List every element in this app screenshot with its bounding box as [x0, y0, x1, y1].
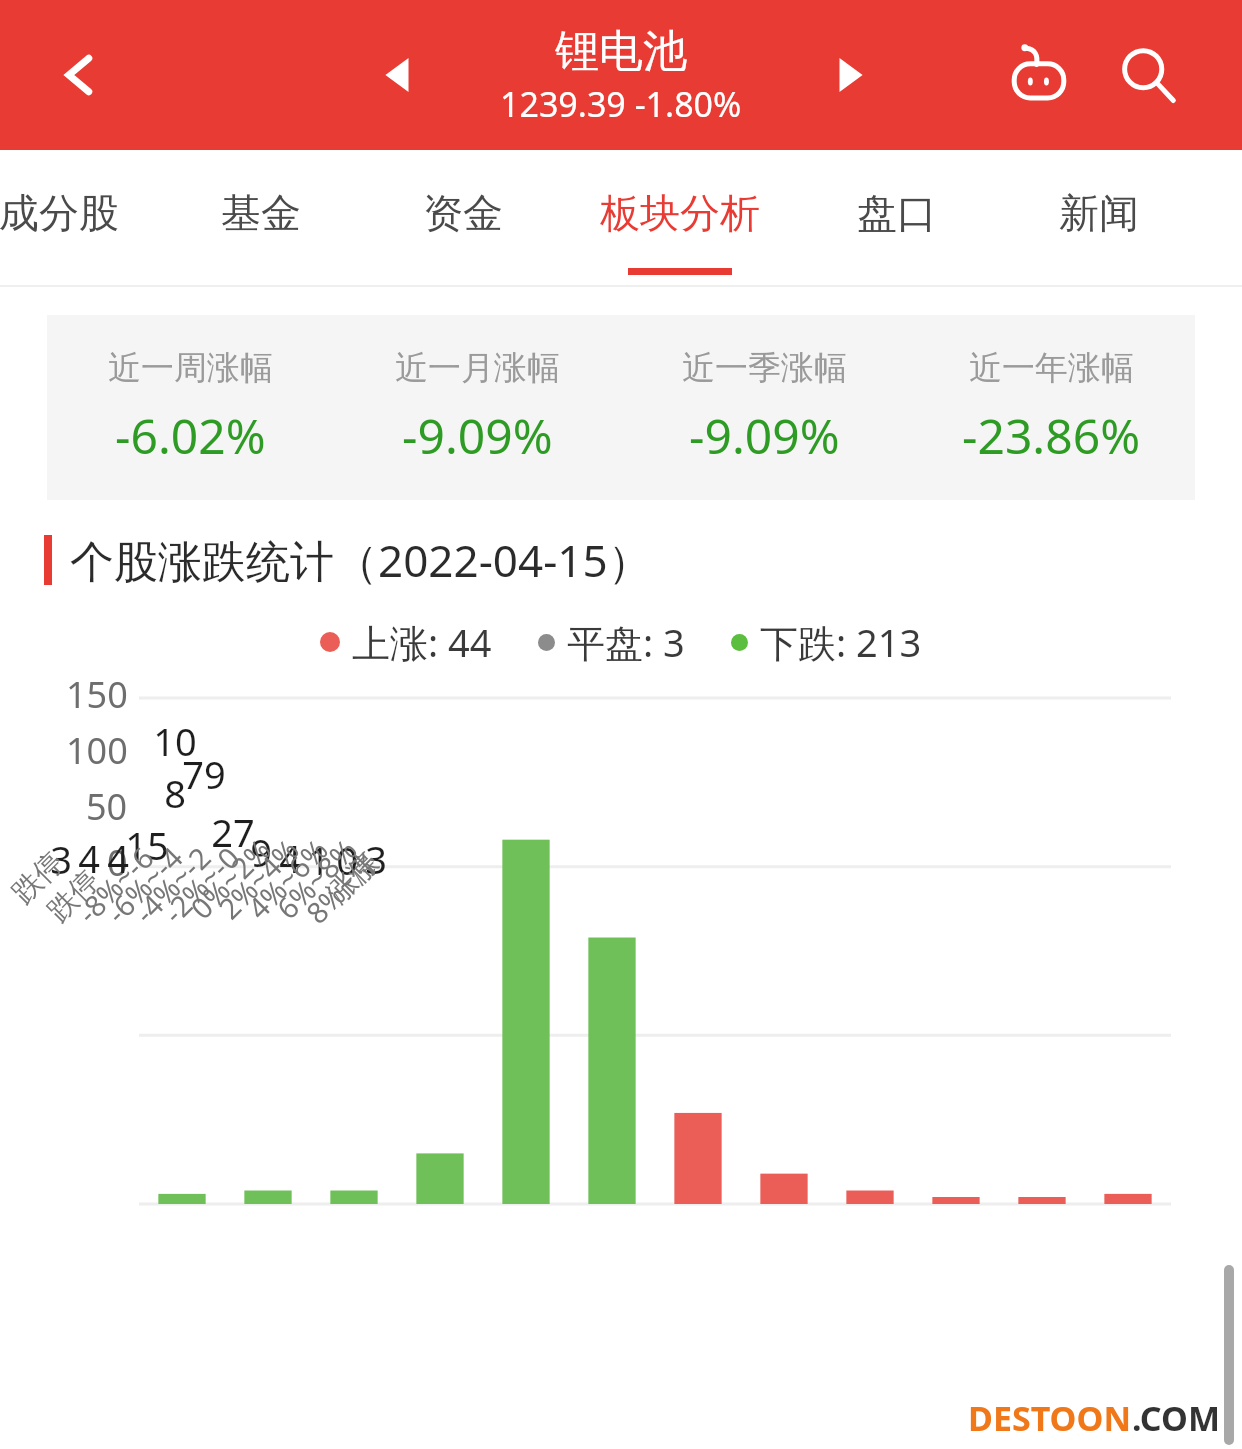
staticText: 个股涨跌统计（2022-04-15） [70, 530, 652, 590]
staticText: 50 [86, 782, 128, 831]
staticText: 上涨: 44 [352, 616, 492, 668]
staticText: 4%~6% [239, 830, 335, 927]
staticText: .COM [1132, 1395, 1220, 1441]
button[interactable]: 下跌: 213 [731, 616, 922, 668]
staticText: -9.09% [689, 403, 840, 468]
staticText: 涨停 [319, 844, 387, 911]
staticText: 79 [182, 748, 226, 800]
button[interactable]: 上涨: 44 [320, 616, 492, 668]
staticText: 27 [211, 806, 255, 858]
staticText: 108 [145, 715, 205, 819]
staticText: 近一周涨幅 [108, 347, 273, 389]
staticText: -2%~-0% [154, 826, 260, 931]
staticText: -8%~-6% [68, 826, 174, 931]
staticText: 盘口 [857, 188, 937, 238]
button[interactable]: 锂电池 [500, 24, 742, 127]
button[interactable]: 近一年涨幅 [908, 347, 1195, 468]
staticText: 新闻 [1059, 188, 1139, 238]
staticText: 成分股 [0, 188, 119, 238]
staticText: 0 [107, 838, 128, 887]
staticText: 近一年涨幅 [969, 347, 1134, 389]
button[interactable]: Previous sector [364, 40, 434, 110]
staticText: 6%~8% [268, 830, 364, 927]
staticText: 0 [336, 834, 358, 886]
staticText: 1239.39 -1.80% [500, 81, 742, 127]
button[interactable]: 盘口 [796, 150, 998, 287]
staticText: 1 [308, 834, 330, 886]
staticText: 0%~2% [182, 830, 278, 927]
staticText: DESTOON [968, 1395, 1132, 1441]
staticText: 跌停 [4, 844, 72, 911]
staticText: 100 [66, 726, 128, 775]
staticText: 9 [250, 826, 272, 878]
button[interactable]: 平盘: 3 [538, 616, 685, 668]
staticText: -9.09% [402, 403, 553, 468]
button[interactable]: Assistant [996, 32, 1082, 118]
staticText: 基金 [221, 188, 301, 238]
staticText: 2%~4% [210, 830, 306, 927]
staticText: 板块分析 [600, 188, 760, 238]
button[interactable]: 资金 [362, 150, 564, 287]
button[interactable]: Search [1106, 32, 1192, 118]
staticText: 4 [107, 832, 129, 884]
button[interactable]: 成分股 [0, 150, 160, 287]
button[interactable]: 近一月涨幅 [334, 347, 621, 468]
staticText: -23.86% [962, 403, 1141, 468]
button[interactable]: Back [40, 35, 120, 115]
button[interactable]: 新闻 [998, 150, 1200, 287]
staticText: 下跌: 213 [760, 616, 922, 668]
staticText: 近一月涨幅 [395, 347, 560, 389]
button[interactable]: 近一周涨幅 [47, 347, 334, 468]
staticText: 近一季涨幅 [682, 347, 847, 389]
staticText: 3 [365, 833, 387, 885]
staticText: 锂电池 [555, 24, 687, 79]
staticText: 3 [50, 833, 72, 885]
staticText: 8%~涨停 [297, 826, 403, 932]
staticText: 资金 [423, 188, 503, 238]
button[interactable]: 板块分析 [564, 150, 796, 287]
staticText: 平盘: 3 [567, 616, 685, 668]
staticText: -6%~-4% [97, 826, 203, 931]
button[interactable]: 基金 [160, 150, 362, 287]
staticText: 4 [279, 832, 301, 884]
staticText: 4 [78, 832, 100, 884]
staticText: -6.02% [115, 403, 266, 468]
staticText: 跌停~-8% [40, 825, 144, 929]
button[interactable]: 近一季涨幅 [621, 347, 908, 468]
staticText: -4%~-2% [125, 826, 231, 931]
button[interactable]: Next sector [814, 40, 884, 110]
staticText: 15 [125, 819, 169, 871]
staticText: 150 [66, 670, 128, 719]
